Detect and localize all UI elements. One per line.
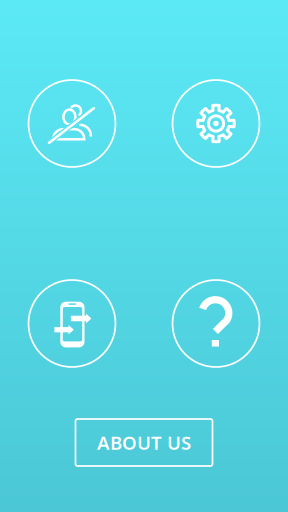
button[interactable]: Transfer data — [28, 280, 115, 367]
button[interactable]: Settings — [172, 80, 259, 167]
button[interactable]: Help — [172, 280, 259, 367]
staticText: ABOUT US — [97, 430, 191, 455]
button[interactable]: ABOUT US — [75, 419, 212, 466]
button[interactable]: Blocked contacts — [28, 80, 115, 167]
